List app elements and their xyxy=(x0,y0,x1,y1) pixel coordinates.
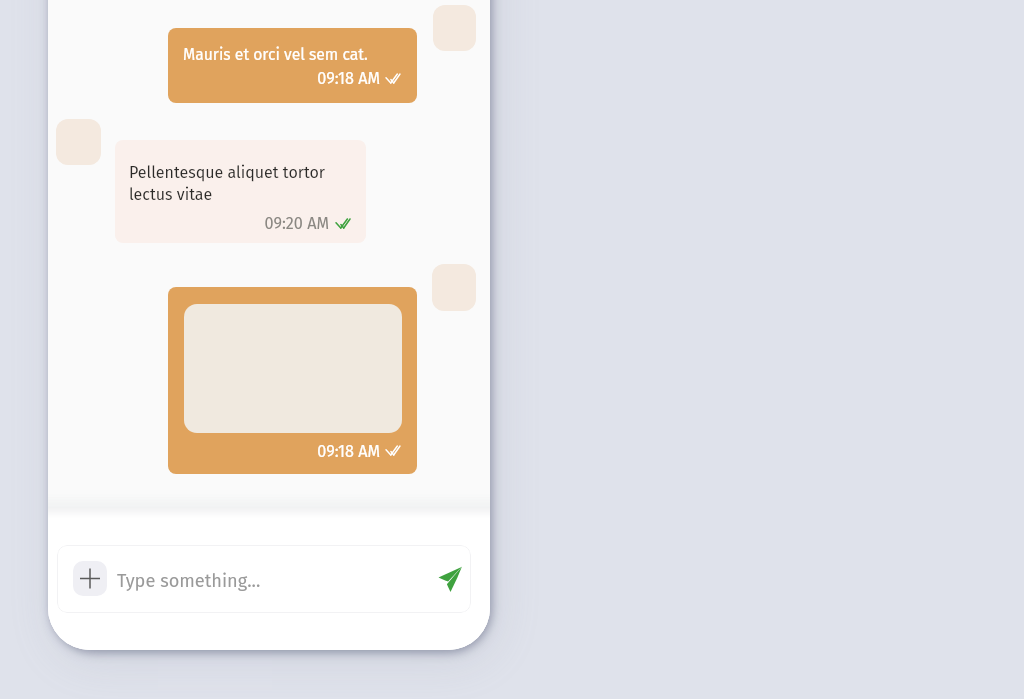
staticText: Pellentesque aliquet tortor xyxy=(129,163,325,182)
staticText: Type something... xyxy=(117,570,261,592)
button[interactable]: Add attachment xyxy=(73,561,107,596)
staticText: 09:18 AM xyxy=(317,442,380,461)
button[interactable]: Add attachment xyxy=(57,545,471,613)
staticText: lectus vitae xyxy=(129,185,213,204)
button[interactable]: 09:18 AM xyxy=(168,287,417,474)
button[interactable]: Mauris et orci vel sem cat. xyxy=(168,28,417,103)
button[interactable]: Contact avatar xyxy=(432,264,476,311)
staticText: 09:18 AM xyxy=(317,69,380,88)
button[interactable]: Send message xyxy=(438,566,462,592)
staticText: 09:20 AM xyxy=(264,214,329,233)
button[interactable]: Contact avatar xyxy=(433,5,476,51)
staticText: Mauris et orci vel sem cat. xyxy=(183,45,368,64)
button[interactable]: Contact avatar xyxy=(56,119,101,165)
button[interactable]: Pellentesque aliquet tortor xyxy=(115,140,366,243)
